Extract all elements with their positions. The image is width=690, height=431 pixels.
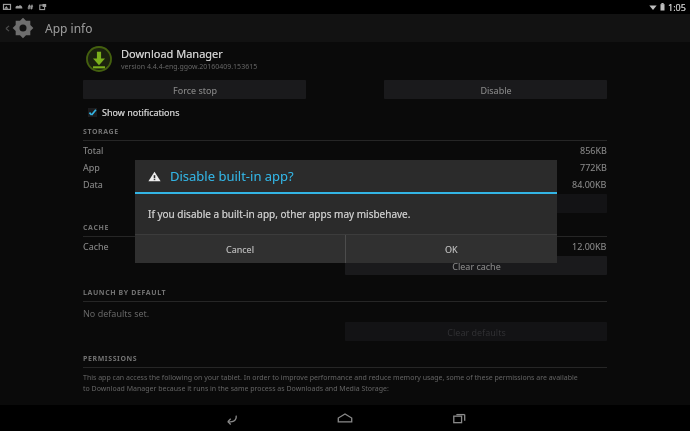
button: Clear defaults	[345, 322, 607, 341]
staticText: App	[83, 161, 100, 173]
staticText: OK	[445, 243, 458, 255]
button[interactable]: Cache	[0, 237, 690, 254]
staticText: 1:05	[668, 1, 686, 13]
staticText: 84.00KB	[572, 178, 607, 190]
staticText: This app can access the following on you…	[83, 373, 578, 383]
staticText: STORAGE	[83, 127, 119, 137]
staticText: If you disable a built-in app, other app…	[148, 207, 411, 221]
staticText: 856KB	[580, 144, 607, 156]
staticText: Total	[83, 144, 104, 156]
staticText: PERMISSIONS	[83, 354, 138, 364]
staticText: App info	[45, 20, 93, 36]
staticText: Clear cache	[452, 260, 501, 272]
button[interactable]: Home	[310, 405, 380, 431]
button[interactable]: Recent apps	[424, 405, 494, 431]
staticText: Cancel	[226, 243, 255, 255]
staticText: Clear defaults	[447, 326, 506, 338]
button[interactable]: App	[0, 158, 690, 175]
staticText: Cache	[83, 240, 109, 252]
staticText: Data	[83, 178, 103, 190]
staticText: LAUNCH BY DEFAULT	[83, 288, 167, 298]
button[interactable]: Cancel	[135, 235, 345, 263]
button[interactable]: Total	[0, 141, 690, 158]
button[interactable]: OK	[346, 235, 557, 263]
staticText: CACHE	[83, 223, 109, 233]
staticText: to Download Manager because it runs in t…	[83, 384, 389, 394]
button[interactable]: Force stop	[83, 80, 306, 99]
staticText: 772KB	[580, 161, 607, 173]
button[interactable]: Data	[0, 175, 690, 192]
staticText: 12.00KB	[572, 240, 607, 252]
button[interactable]: Show notifications	[88, 106, 180, 118]
staticText: Disable	[480, 84, 512, 96]
button: Clear data	[345, 194, 607, 213]
staticText: Force stop	[173, 84, 217, 96]
button[interactable]: Disable	[384, 80, 607, 99]
button[interactable]: Clear cache	[345, 256, 607, 275]
staticText: Disable built-in app?	[170, 167, 294, 185]
staticText: version 4.4.4-eng.ggow.20160409.153615	[121, 62, 258, 72]
staticText: Show notifications	[102, 106, 180, 118]
button[interactable]: Back	[196, 405, 266, 431]
staticText: Download Manager	[121, 46, 223, 61]
button[interactable]: Navigate up	[0, 14, 38, 42]
staticText: No defaults set.	[83, 307, 150, 319]
